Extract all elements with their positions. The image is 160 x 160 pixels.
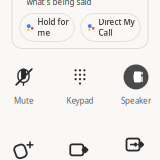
button[interactable]: Mute xyxy=(0,64,48,106)
staticText: Speaker xyxy=(121,95,151,106)
staticText: Keypad xyxy=(66,95,93,106)
button[interactable]: Video call xyxy=(56,137,104,160)
button[interactable]: Direct My Call xyxy=(80,13,140,41)
staticText: or tap "Direct My Call" to see what's be… xyxy=(26,0,133,7)
staticText: Hold for me xyxy=(37,17,68,38)
button[interactable]: Hold for me xyxy=(19,13,74,41)
button[interactable]: Keypad xyxy=(56,64,104,106)
staticText: Direct My Call xyxy=(98,17,134,38)
button[interactable]: Speaker xyxy=(112,64,160,106)
staticText: Mute xyxy=(14,95,34,106)
button[interactable]: Add call xyxy=(0,137,48,160)
button[interactable]: Add my camera xyxy=(112,132,160,160)
